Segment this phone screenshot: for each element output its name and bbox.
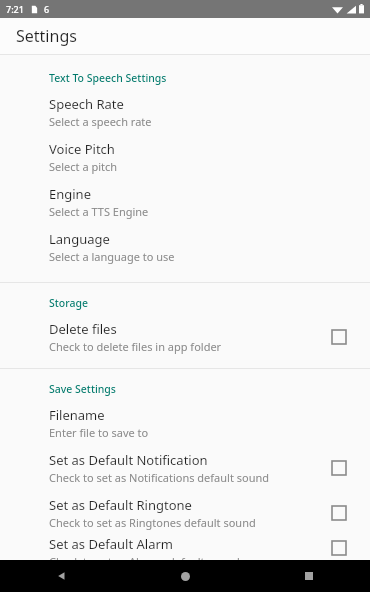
- staticText: Delete files: [49, 320, 117, 338]
- staticText: Save Settings: [49, 382, 116, 396]
- staticText: Check to set as Alarms default sound: [49, 554, 240, 560]
- staticText: Voice Pitch: [49, 140, 115, 158]
- button[interactable]: Speech Rate: [0, 89, 370, 134]
- button[interactable]: Back: [0, 560, 124, 592]
- staticText: Check to set as Notifications default so…: [49, 470, 270, 485]
- button[interactable]: Home: [124, 560, 247, 592]
- staticText: Language: [49, 230, 110, 248]
- button[interactable]: Toggle Set as Default Alarm: [324, 535, 354, 560]
- button[interactable]: Set as Default Ringtone: [0, 490, 370, 535]
- staticText: Text To Speech Settings: [49, 71, 167, 85]
- button[interactable]: Language: [0, 224, 370, 269]
- button[interactable]: Toggle Set as Default Notification: [324, 453, 354, 483]
- button[interactable]: Filename: [0, 400, 370, 445]
- staticText: Engine: [49, 185, 91, 203]
- staticText: Settings: [16, 25, 77, 47]
- staticText: Speech Rate: [49, 95, 124, 113]
- staticText: Select a language to use: [49, 249, 175, 264]
- button[interactable]: Toggle Set as Default Ringtone: [324, 498, 354, 528]
- staticText: Select a pitch: [49, 159, 118, 174]
- button[interactable]: Voice Pitch: [0, 134, 370, 179]
- staticText: Select a speech rate: [49, 114, 152, 129]
- staticText: Select a TTS Engine: [49, 204, 149, 219]
- button[interactable]: Recent apps: [247, 560, 370, 592]
- staticText: 7:21: [6, 3, 24, 15]
- button[interactable]: Set as Default Notification: [0, 445, 370, 490]
- staticText: Storage: [49, 296, 88, 310]
- staticText: Set as Default Notification: [49, 451, 208, 469]
- staticText: Filename: [49, 406, 105, 424]
- staticText: Check to set as Ringtones default sound: [49, 515, 256, 530]
- button[interactable]: Engine: [0, 179, 370, 224]
- staticText: Enter file to save to: [49, 425, 149, 440]
- staticText: Set as Default Alarm: [49, 535, 173, 553]
- staticText: 6: [44, 3, 50, 15]
- button[interactable]: Toggle Delete files: [324, 322, 354, 352]
- button[interactable]: Delete files: [0, 314, 370, 359]
- staticText: Set as Default Ringtone: [49, 496, 192, 514]
- button[interactable]: Set as Default Alarm: [0, 535, 370, 560]
- staticText: Check to delete files in app folder: [49, 339, 222, 354]
